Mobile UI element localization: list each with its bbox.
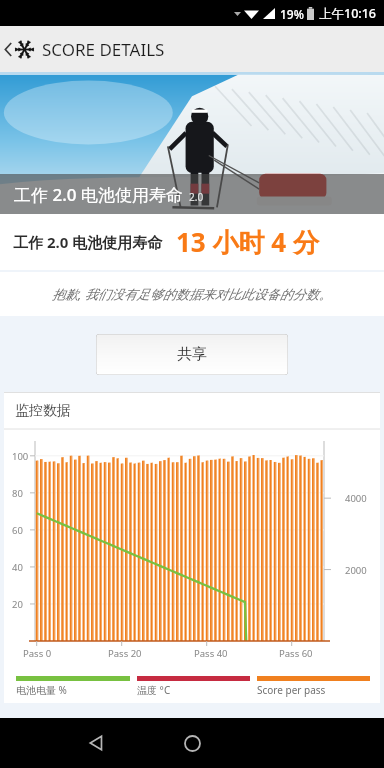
staticText: 电池电量 %	[16, 683, 67, 697]
button[interactable]: Home	[175, 726, 209, 760]
staticText: 共享	[177, 345, 207, 364]
staticText: 监控数据	[15, 402, 71, 420]
staticText: Pass 40	[194, 647, 228, 660]
staticText: SCORE DETAILS	[42, 38, 165, 61]
button[interactable]: 共享	[96, 334, 288, 375]
staticText: 13 小时 4 分	[176, 224, 319, 260]
button[interactable]: Back	[80, 726, 114, 760]
staticText: 上午10:16	[319, 5, 377, 22]
staticText: 工作 2.0 电池使用寿命	[13, 232, 163, 252]
staticText: Pass 20	[108, 647, 142, 660]
staticText: 100	[12, 450, 29, 463]
staticText: 2.0	[189, 190, 204, 204]
staticText: 80	[12, 487, 23, 500]
staticText: 40	[12, 561, 23, 574]
staticText: 60	[12, 524, 23, 537]
staticText: 4000	[345, 492, 367, 505]
staticText: Pass 60	[279, 647, 313, 660]
staticText: 工作 2.0 电池使用寿命	[14, 183, 183, 206]
staticText: Score per pass	[257, 683, 326, 697]
button[interactable]: Back	[4, 38, 165, 61]
staticText: 20	[12, 598, 23, 611]
staticText: 2000	[345, 564, 367, 577]
staticText: 19%	[280, 6, 304, 22]
staticText: Pass 0	[23, 647, 52, 660]
staticText: 抱歉, 我们没有足够的数据来对比此设备的分数。	[52, 285, 332, 303]
staticText: 温度 °C	[137, 683, 171, 697]
